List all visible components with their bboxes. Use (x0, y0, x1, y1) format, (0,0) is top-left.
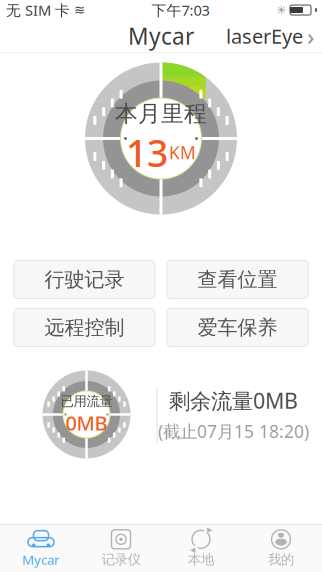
staticText: 本月里程 (115, 100, 207, 128)
button[interactable]: 我的 (241, 525, 321, 572)
staticText: 本地 (188, 551, 214, 568)
staticText: ≋ (74, 2, 85, 17)
button[interactable]: 记录仪 (81, 525, 161, 572)
staticText: 剩余流量0MB (169, 386, 298, 415)
staticText: Mycar (128, 21, 194, 51)
staticText: laserEye (226, 23, 303, 49)
button[interactable]: 远程控制 (14, 308, 155, 346)
staticText: 记录仪 (101, 551, 140, 568)
staticText: › (307, 20, 314, 52)
button[interactable]: 行驶记录 (14, 260, 155, 298)
button[interactable]: laserEye (218, 15, 322, 57)
staticText: Mycar (22, 551, 60, 568)
button[interactable]: Mycar (1, 525, 81, 572)
staticText: 远程控制 (44, 315, 124, 340)
staticText: 已用流量 (60, 393, 112, 409)
staticText: ◂ (190, 543, 195, 555)
staticText: ✳ (276, 3, 286, 17)
staticText: 下午7:03 (151, 0, 209, 20)
button[interactable]: 查看位置 (167, 260, 308, 298)
staticText: KM (169, 141, 196, 164)
button[interactable]: 爱车保养 (167, 308, 308, 346)
staticText: ▸ (207, 523, 212, 535)
staticText: 我的 (268, 551, 294, 568)
staticText: (截止07月15 18:20) (158, 420, 309, 443)
staticText: 13 (126, 128, 168, 177)
staticText: 行驶记录 (44, 267, 124, 292)
button[interactable]: ▸ (161, 525, 241, 572)
staticText: 无 SIM 卡 (6, 0, 70, 20)
staticText: 0MB (65, 409, 107, 436)
staticText: 爱车保养 (197, 315, 277, 340)
staticText: 查看位置 (197, 267, 277, 292)
